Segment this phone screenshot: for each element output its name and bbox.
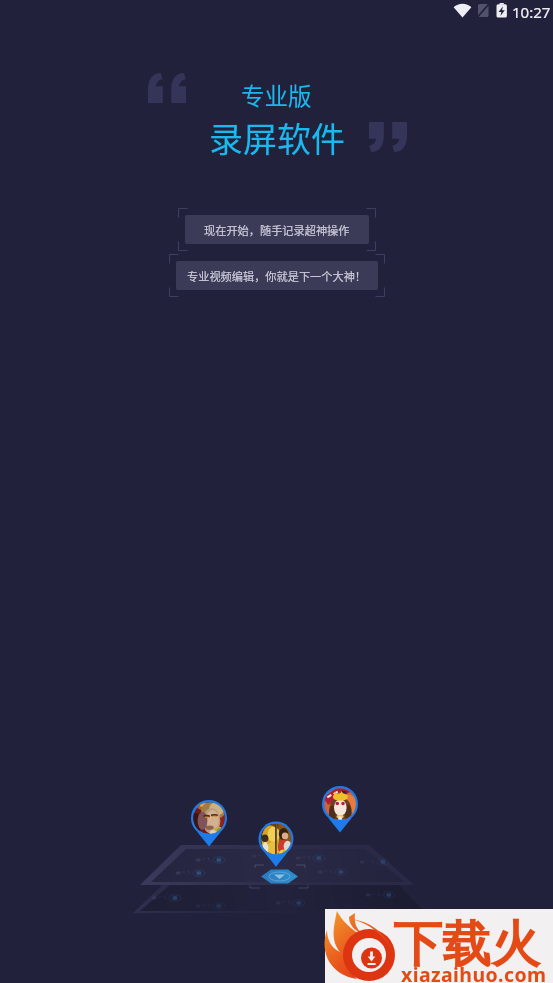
staticText: 现在开始，随手记录超神操作 [204,222,350,238]
staticText: 录屏软件 [209,113,345,162]
staticText: xiazaihuo.com [401,961,547,983]
staticText: 10:27 [512,2,551,22]
button[interactable]: 专业视频编辑，你就是下一个大神！ [176,261,378,290]
button[interactable]: 现在开始，随手记录超神操作 [185,215,369,244]
staticText: 专业版 [241,78,312,112]
staticText: 下载火 [393,914,540,976]
staticText: 专业视频编辑，你就是下一个大神！ [187,268,367,284]
